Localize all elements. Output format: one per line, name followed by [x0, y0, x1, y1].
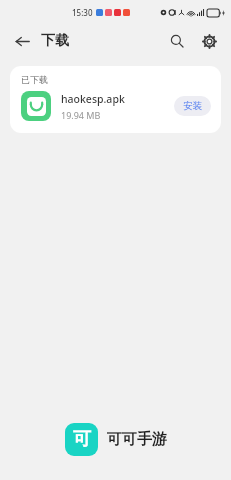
staticText: 15:30 [72, 7, 93, 18]
staticText: 可可手游 [107, 430, 167, 449]
staticText: 安装 [183, 100, 202, 112]
staticText: 可 [73, 428, 91, 451]
button[interactable]: 可 [61, 419, 171, 460]
staticText: 下载 [41, 32, 69, 50]
staticText: 已下载 [21, 74, 48, 85]
button[interactable]: 安装 [174, 96, 211, 116]
button[interactable]: haokesp.apk [10, 87, 221, 133]
button[interactable]: Back [10, 29, 34, 53]
staticText: haokesp.apk [61, 92, 125, 106]
button[interactable]: Search [165, 29, 189, 53]
button[interactable]: Settings [197, 29, 221, 53]
staticText: 19.94 MB [61, 109, 101, 121]
